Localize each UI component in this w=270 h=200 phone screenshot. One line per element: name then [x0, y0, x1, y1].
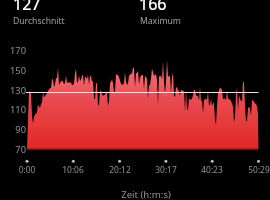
staticText: 90	[8, 123, 26, 136]
staticText: 130	[8, 84, 26, 97]
staticText: 70	[8, 143, 26, 156]
staticText: Zeit (h:m:s)	[22, 188, 270, 200]
staticText: 127	[13, 0, 41, 15]
staticText: 150	[8, 64, 26, 77]
staticText: 30:17	[150, 164, 182, 175]
staticText: Maximum	[140, 15, 181, 27]
staticText: 40:23	[196, 164, 228, 175]
staticText: 110	[8, 103, 26, 116]
staticText: 0:00	[11, 164, 43, 175]
staticText: 20:12	[104, 164, 136, 175]
staticText: Durchschnitt	[13, 15, 65, 27]
staticText: 166	[139, 0, 167, 15]
staticText: 10:06	[57, 164, 89, 175]
staticText: 50:29	[243, 164, 270, 175]
staticText: 170	[8, 44, 26, 57]
